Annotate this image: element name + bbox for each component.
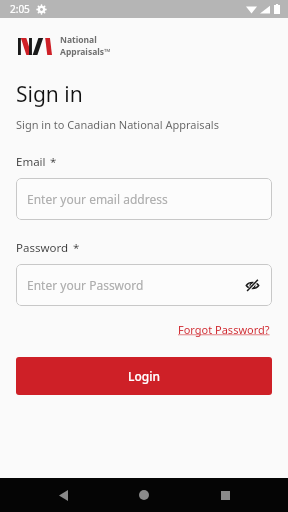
button[interactable]: Back <box>45 478 81 512</box>
button[interactable]: Home <box>126 478 162 512</box>
staticText: * <box>50 154 57 170</box>
staticText: Sign in <box>16 80 83 109</box>
staticText: National <box>60 34 97 46</box>
staticText: Forgot Password? <box>178 322 270 337</box>
button[interactable]: Enter your email address <box>16 178 272 220</box>
staticText: 2:05 <box>10 2 30 16</box>
staticText: * <box>73 240 80 256</box>
button[interactable]: Show password <box>240 273 264 297</box>
staticText: Login <box>128 368 160 384</box>
staticText: Enter your Password <box>27 277 144 293</box>
button[interactable]: Forgot Password? <box>176 320 272 339</box>
staticText: Enter your email address <box>27 191 168 207</box>
staticText: Appraisals™ <box>60 46 111 58</box>
button[interactable]: Recent apps <box>207 478 243 512</box>
staticText: Password <box>16 240 69 256</box>
button[interactable]: Enter your Password <box>16 264 272 306</box>
button[interactable]: Login <box>16 357 272 395</box>
staticText: Sign in to Canadian National Appraisals <box>16 117 219 132</box>
staticText: Email <box>16 154 46 170</box>
